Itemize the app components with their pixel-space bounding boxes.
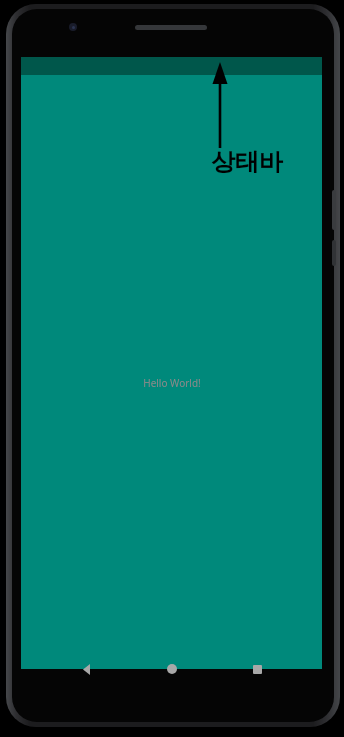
button[interactable]: Home: [159, 656, 185, 682]
button[interactable]: Back: [73, 656, 99, 682]
staticText: 상태바: [211, 147, 283, 177]
button[interactable]: Recent apps: [244, 656, 270, 682]
staticText: Hello World!: [143, 376, 201, 390]
